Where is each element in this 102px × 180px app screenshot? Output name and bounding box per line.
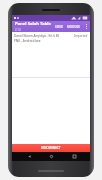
staticText: MODULE [67, 25, 81, 29]
button[interactable]: MODULE [66, 24, 82, 30]
staticText: DISCONNECT [41, 146, 61, 150]
button[interactable]: Recent apps [68, 152, 80, 161]
button[interactable]: Back [23, 152, 35, 161]
button[interactable]: More options [84, 22, 89, 31]
staticText: Danol Eboon Amjidiya - Kit 6 85 [14, 34, 60, 38]
button[interactable]: SEND [54, 24, 64, 30]
staticText: PNK - Android.bee [14, 39, 41, 43]
staticText: 2.1.0 [15, 28, 21, 32]
staticText: Imported [74, 34, 88, 38]
button[interactable]: Danol Eboon Amjidiya - Kit 6 85 [12, 32, 90, 45]
staticText: SEND [55, 25, 63, 29]
button[interactable]: Home [45, 152, 57, 161]
button[interactable]: DISCONNECT [12, 144, 90, 152]
staticText: Panel Salah Table [15, 21, 52, 27]
